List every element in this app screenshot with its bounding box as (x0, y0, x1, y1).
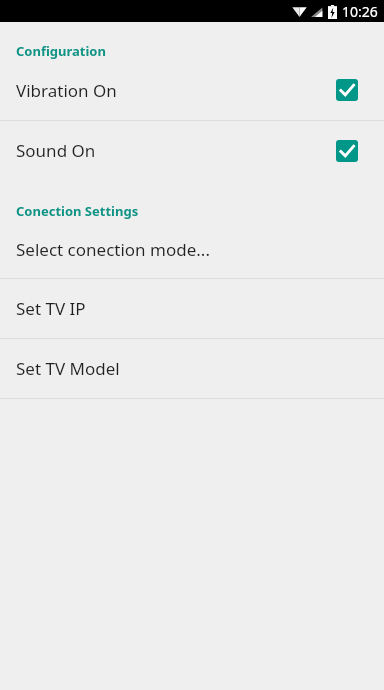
button[interactable]: Vibration On checkbox, checked (336, 79, 358, 101)
staticText: Set TV IP (16, 297, 86, 320)
staticText: Sound On (16, 139, 336, 162)
button[interactable]: Sound On (0, 121, 384, 180)
staticText: Vibration On (16, 79, 336, 102)
staticText: 10:26 (342, 2, 378, 21)
button[interactable]: Sound On checkbox, checked (336, 140, 358, 162)
staticText: Select conection mode... (16, 238, 210, 261)
button[interactable]: Vibration On (0, 60, 384, 120)
button[interactable]: Set TV IP (0, 279, 384, 338)
staticText: Conection Settings (16, 202, 139, 220)
button[interactable]: Set TV Model (0, 339, 384, 398)
button[interactable]: Select conection mode... (0, 220, 384, 278)
staticText: Configuration (16, 42, 106, 60)
staticText: Set TV Model (16, 357, 120, 380)
